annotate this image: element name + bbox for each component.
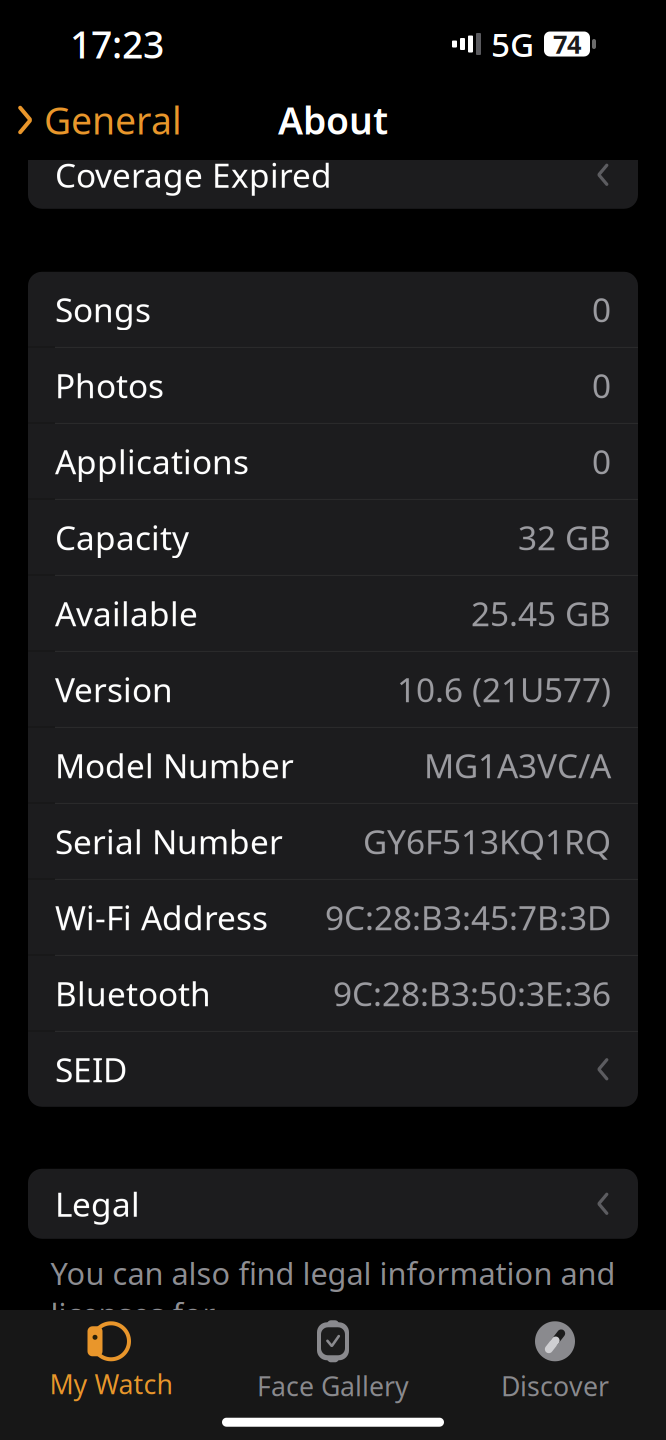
- staticText: 0: [592, 287, 611, 331]
- button[interactable]: Serial Number: [28, 804, 638, 879]
- button[interactable]: Wi-Fi Address: [28, 880, 638, 955]
- staticText: Serial Number: [55, 819, 283, 863]
- staticText: Coverage Expired: [55, 153, 332, 197]
- button[interactable]: Discover: [444, 1309, 666, 1410]
- button[interactable]: Bluetooth: [28, 956, 638, 1031]
- staticText: Face Gallery: [257, 1368, 409, 1404]
- staticText: Applications: [55, 439, 249, 483]
- staticText: GY6F513KQ1RQ: [363, 819, 611, 863]
- button[interactable]: Face Gallery: [222, 1309, 444, 1410]
- staticText: Songs: [55, 287, 151, 331]
- button[interactable]: Model Number: [28, 728, 638, 803]
- staticText: Capacity: [55, 515, 189, 559]
- button[interactable]: Available: [28, 576, 638, 651]
- staticText: My Watch: [49, 1366, 172, 1402]
- staticText: Photos: [55, 363, 164, 407]
- button[interactable]: Version: [28, 652, 638, 727]
- staticText: Legal: [55, 1182, 140, 1226]
- staticText: 10.6 (21U577): [397, 667, 611, 711]
- staticText: Version: [55, 667, 173, 711]
- button[interactable]: Photos: [28, 348, 638, 423]
- staticText: 17:23: [70, 19, 164, 69]
- staticText: Available: [55, 591, 198, 635]
- staticText: Discover: [501, 1368, 609, 1404]
- staticText: About: [278, 95, 388, 145]
- button[interactable]: General: [0, 92, 198, 148]
- button[interactable]: Legal: [28, 1169, 638, 1239]
- button[interactable]: Songs: [28, 272, 638, 347]
- staticText: General: [44, 95, 182, 145]
- staticText: MG1A3VC/A: [424, 743, 611, 787]
- staticText: 0: [592, 439, 611, 483]
- staticText: 5G: [491, 22, 534, 66]
- staticText: 9C:28:B3:45:7B:3D: [325, 895, 611, 939]
- staticText: SEID: [55, 1047, 127, 1091]
- button[interactable]: SEID: [28, 1032, 638, 1107]
- staticText: 74: [553, 27, 581, 61]
- staticText: Bluetooth: [55, 971, 211, 1015]
- staticText: Model Number: [55, 743, 294, 787]
- button[interactable]: Capacity: [28, 500, 638, 575]
- staticText: 0: [592, 363, 611, 407]
- staticText: Wi-Fi Address: [55, 895, 268, 939]
- button[interactable]: Applications: [28, 424, 638, 499]
- staticText: 9C:28:B3:50:3E:36: [333, 971, 611, 1015]
- staticText: You can also find legal information and …: [50, 1253, 615, 1334]
- staticText: 32 GB: [518, 515, 611, 559]
- staticText: 25.45 GB: [471, 591, 611, 635]
- button[interactable]: My Watch: [0, 1311, 222, 1408]
- button[interactable]: Coverage Expired: [28, 141, 638, 209]
